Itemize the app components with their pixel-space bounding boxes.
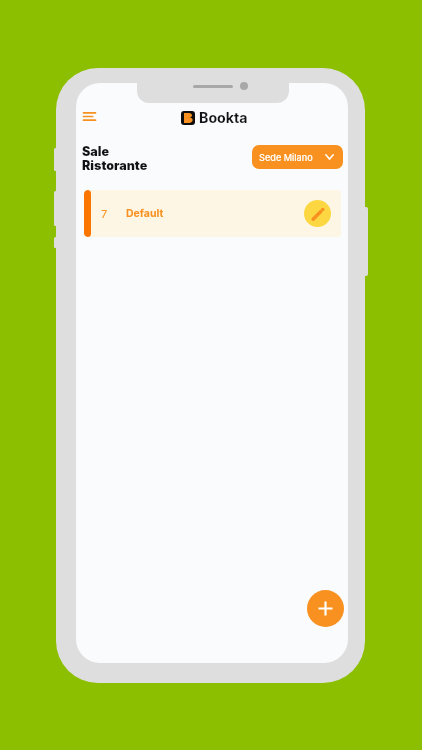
button[interactable]: Add — [307, 590, 344, 627]
button[interactable]: 7 — [84, 190, 341, 237]
staticText: Default — [126, 207, 164, 220]
button[interactable]: Sede Milano — [252, 145, 343, 169]
button[interactable]: Edit — [304, 200, 331, 227]
staticText: 7 — [101, 207, 108, 220]
button[interactable]: Menu — [76, 106, 102, 126]
staticText: Sale Ristorante — [82, 144, 148, 173]
staticText: Sede Milano — [259, 152, 313, 163]
staticText: Bookta — [199, 109, 248, 126]
